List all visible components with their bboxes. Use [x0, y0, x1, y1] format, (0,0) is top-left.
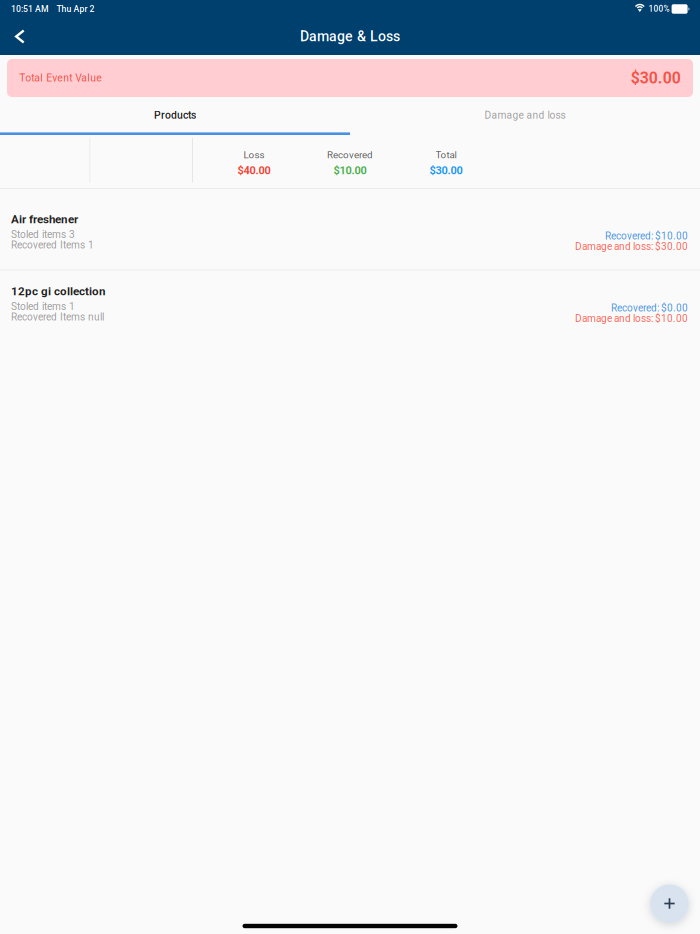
staticText: Recovered Items 1: [11, 239, 94, 251]
staticText: Total Event Value: [19, 72, 102, 84]
staticText: $10.00: [333, 164, 366, 177]
staticText: Total: [435, 149, 456, 161]
staticText: $30.00: [429, 164, 462, 177]
button[interactable]: Products: [0, 98, 350, 135]
staticText: Stoled items 1: [11, 301, 75, 312]
staticText: Stoled items 3: [11, 229, 75, 240]
staticText: 12pc gi collection: [11, 284, 106, 298]
staticText: Damage and loss: $10.00: [575, 313, 688, 324]
staticText: Recovered: [327, 149, 373, 161]
staticText: 100%: [649, 4, 670, 14]
button[interactable]: Damage and loss: [350, 98, 700, 135]
staticText: Loss: [243, 149, 264, 161]
staticText: 10:51 AM: [11, 4, 49, 14]
staticText: Damage and loss: $30.00: [575, 241, 688, 252]
button[interactable]: Back: [0, 18, 40, 55]
staticText: Thu Apr 2: [56, 4, 94, 14]
staticText: Damage and loss: [484, 109, 565, 121]
staticText: Air freshener: [11, 212, 78, 226]
button[interactable]: Air freshener: [0, 198, 700, 269]
staticText: $30.00: [631, 69, 681, 87]
staticText: Damage & Loss: [300, 28, 400, 45]
button[interactable]: 12pc gi collection: [0, 270, 700, 341]
staticText: Recovered: $10.00: [605, 230, 688, 242]
staticText: Recovered: $0.00: [611, 302, 688, 314]
staticText: $40.00: [237, 164, 270, 177]
staticText: Products: [154, 109, 196, 121]
staticText: Recovered Items null: [11, 311, 104, 323]
button[interactable]: Add: [650, 884, 688, 922]
